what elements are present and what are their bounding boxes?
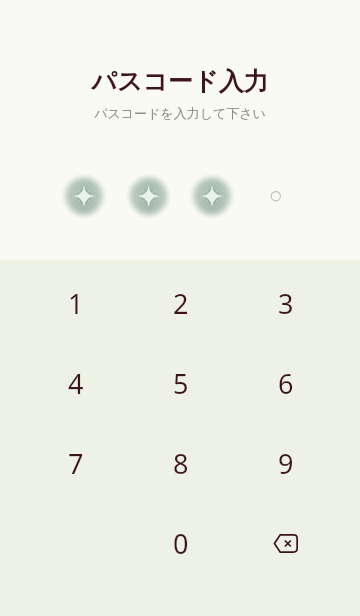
button[interactable]: 4 bbox=[23, 343, 128, 423]
button[interactable]: 9 bbox=[233, 423, 338, 503]
staticText: 7 bbox=[68, 445, 84, 482]
staticText: 6 bbox=[278, 365, 294, 402]
button[interactable]: 8 bbox=[128, 423, 233, 503]
staticText: 1 bbox=[68, 285, 84, 322]
button[interactable]: 3 bbox=[233, 263, 338, 343]
staticText: 8 bbox=[173, 445, 189, 482]
staticText: パスコードを入力して下さい bbox=[94, 105, 266, 121]
staticText: 3 bbox=[278, 285, 294, 322]
staticText: パスコード入力 bbox=[91, 66, 269, 97]
button[interactable]: 6 bbox=[233, 343, 338, 423]
button[interactable]: 1 bbox=[23, 263, 128, 343]
button[interactable]: 0 bbox=[128, 503, 233, 583]
staticText: 0 bbox=[173, 525, 189, 562]
button[interactable]: Delete bbox=[233, 503, 338, 583]
button[interactable]: 7 bbox=[23, 423, 128, 503]
button[interactable]: 5 bbox=[128, 343, 233, 423]
staticText: 9 bbox=[278, 445, 294, 482]
staticText: 4 bbox=[68, 365, 84, 402]
button[interactable]: 2 bbox=[128, 263, 233, 343]
staticText: 5 bbox=[173, 365, 189, 402]
staticText: 2 bbox=[173, 285, 189, 322]
other: Delete bbox=[273, 534, 298, 553]
